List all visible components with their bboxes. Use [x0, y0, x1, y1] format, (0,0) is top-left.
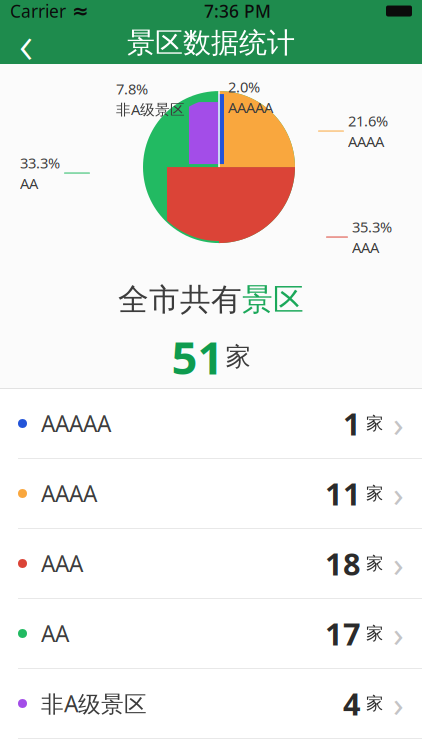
- staticText: AAA: [352, 238, 379, 257]
- staticText: 非A级景区: [41, 688, 147, 718]
- staticText: 51: [171, 327, 223, 387]
- staticText: 家: [366, 483, 383, 504]
- button[interactable]: AAAAA: [0, 389, 422, 458]
- staticText: AA: [41, 618, 69, 648]
- staticText: Carrier: [10, 0, 66, 22]
- staticText: 7.8%: [116, 79, 148, 99]
- staticText: ›: [393, 470, 404, 516]
- button[interactable]: 非A级景区: [0, 669, 422, 738]
- staticText: AAAA: [348, 132, 384, 151]
- staticText: 18: [325, 543, 361, 584]
- staticText: 家: [366, 623, 383, 644]
- staticText: 全市共有: [118, 281, 242, 319]
- staticText: ›: [393, 680, 404, 726]
- button[interactable]: AA: [0, 599, 422, 668]
- staticText: 4: [343, 683, 361, 724]
- staticText: 2.0%: [228, 77, 260, 97]
- staticText: ≈: [72, 0, 89, 22]
- staticText: 景区: [242, 281, 304, 319]
- staticText: ›: [393, 610, 404, 656]
- staticText: AA: [20, 174, 38, 193]
- button[interactable]: Back: [0, 22, 52, 64]
- staticText: 家: [366, 693, 383, 714]
- staticText: ›: [393, 540, 404, 586]
- staticText: 家: [225, 341, 250, 372]
- staticText: AAAA: [41, 478, 97, 508]
- staticText: AAAAA: [41, 408, 111, 438]
- staticText: 1: [343, 403, 361, 444]
- staticText: AAAAA: [228, 98, 273, 117]
- staticText: 21.6%: [348, 111, 388, 131]
- staticText: 家: [366, 413, 383, 434]
- button[interactable]: AAAA: [0, 459, 422, 528]
- staticText: AAA: [41, 548, 83, 578]
- staticText: 景区数据统计: [127, 26, 295, 60]
- staticText: 35.3%: [352, 217, 392, 237]
- staticText: ›: [393, 400, 404, 446]
- staticText: 17: [325, 613, 361, 654]
- staticText: 11: [325, 473, 361, 514]
- button[interactable]: AAA: [0, 529, 422, 598]
- staticText: 33.3%: [20, 153, 60, 173]
- staticText: 7:36 PM: [204, 0, 271, 22]
- staticText: 非A级景区: [116, 100, 185, 119]
- staticText: ‹: [19, 8, 33, 78]
- staticText: 家: [366, 553, 383, 574]
